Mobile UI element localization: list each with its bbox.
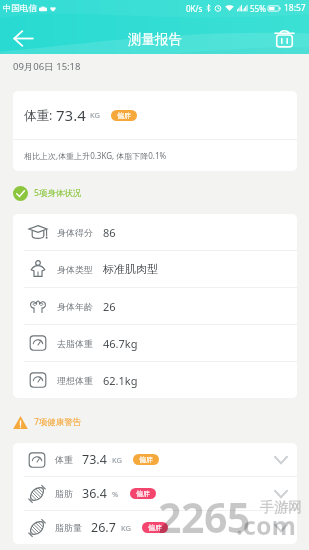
staticText: 偏胖: [139, 455, 153, 464]
staticText: 身体类型: [57, 264, 93, 275]
staticText: KG: [121, 523, 131, 533]
staticText: 73.4: [82, 451, 107, 468]
staticText: 09月06日 15:18: [13, 60, 81, 73]
staticText: 身体得分: [57, 227, 93, 238]
staticText: 0K/s: [186, 3, 203, 14]
staticText: 相比上次,体重上升0.3KG, 体脂下降0.1%: [24, 150, 167, 161]
staticText: .com: [236, 508, 296, 542]
staticText: 18:57: [284, 2, 306, 14]
staticText: 26: [103, 299, 116, 314]
staticText: 身体年龄: [57, 301, 93, 312]
staticText: 46.7kg: [103, 336, 138, 351]
button[interactable]: 去脂体重: [13, 325, 297, 361]
staticText: 7项健康警告: [34, 416, 82, 428]
button[interactable]: 理想体重: [13, 362, 297, 398]
staticText: 36.4: [82, 485, 107, 502]
button[interactable]: 体重: [13, 443, 297, 476]
staticText: 5项身体状况: [34, 187, 82, 199]
staticText: 86: [103, 225, 116, 240]
button[interactable]: Back: [8, 25, 38, 51]
staticText: 62.1kg: [103, 373, 138, 388]
button[interactable]: 脂肪量: [13, 511, 297, 544]
button[interactable]: 身体得分: [13, 214, 297, 250]
staticText: 55%: [250, 3, 266, 14]
staticText: 脂肪: [55, 488, 73, 499]
button[interactable]: Delete: [273, 29, 295, 49]
staticText: 26.7: [91, 519, 116, 536]
staticText: KG: [90, 110, 100, 120]
staticText: 73.4: [56, 105, 86, 125]
staticText: 标准肌肉型: [103, 262, 158, 276]
staticText: 中国电信: [3, 3, 37, 14]
button[interactable]: 身体类型: [13, 251, 297, 287]
staticText: KG: [112, 455, 122, 465]
button[interactable]: 身体年龄: [13, 288, 297, 324]
staticText: 体重: [55, 454, 73, 465]
staticText: 2265: [158, 489, 250, 545]
staticText: 测量报告: [128, 31, 182, 48]
staticText: 偏胖: [148, 523, 162, 532]
staticText: 偏胖: [117, 111, 131, 120]
button[interactable]: 脂肪: [13, 477, 297, 510]
staticText: 偏胖: [136, 489, 150, 498]
staticText: %: [112, 489, 119, 499]
staticText: 脂肪量: [55, 522, 82, 533]
staticText: 体重:: [24, 107, 53, 124]
staticText: 理想体重: [57, 375, 93, 386]
staticText: 手游网: [260, 499, 302, 517]
staticText: 去脂体重: [57, 338, 93, 349]
